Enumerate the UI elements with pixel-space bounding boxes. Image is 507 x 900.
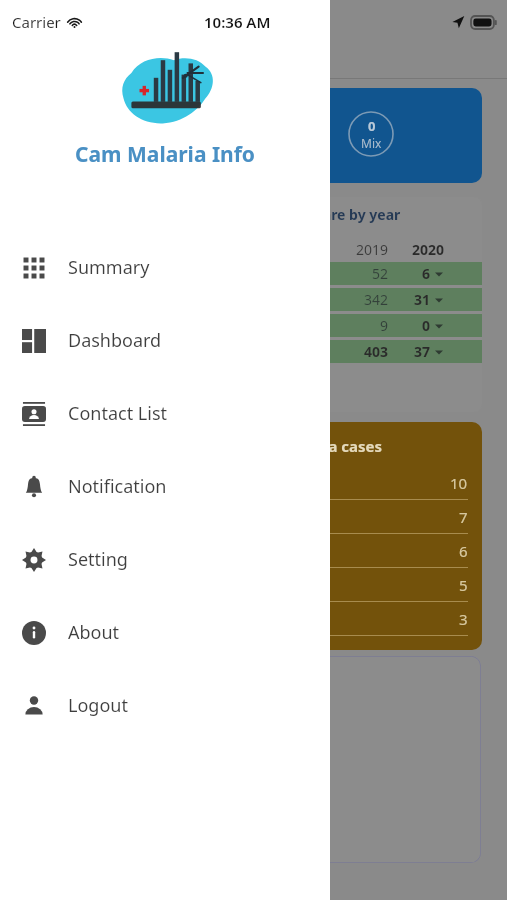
staticText: Ou Sambrom	[184, 473, 450, 493]
button[interactable]: Summary	[0, 231, 330, 304]
staticText: Mix	[361, 135, 382, 151]
staticText: Logout	[68, 693, 128, 718]
staticText: 37	[396, 342, 430, 361]
staticText: 0	[368, 117, 376, 135]
button[interactable]: Logout	[0, 669, 330, 742]
staticText: Contact List	[68, 401, 167, 426]
staticText: Summary	[68, 255, 150, 280]
button[interactable]: Contact List	[0, 377, 330, 450]
button[interactable]: Notification	[0, 450, 330, 523]
staticText: 3	[459, 609, 468, 629]
staticText: 6	[396, 264, 430, 283]
staticText: Pou Krouch	[184, 541, 459, 561]
staticText: 10:36 AM	[204, 12, 271, 32]
button[interactable]: About	[0, 596, 330, 669]
staticText: About	[68, 620, 120, 645]
staticText: 2020	[396, 240, 444, 259]
staticText: 9	[326, 316, 388, 335]
staticText: Malaria cases compare by year	[186, 205, 401, 224]
staticText: Top 5 village malaria cases	[184, 436, 383, 456]
button[interactable]: Dashboard	[0, 304, 330, 377]
staticText: Chak Krong	[184, 507, 459, 527]
staticText: 403	[326, 342, 388, 361]
staticText: 6	[459, 541, 468, 561]
staticText: Setting	[68, 547, 128, 572]
staticText: 10	[450, 473, 468, 493]
staticText: Kbal Damrei	[184, 609, 459, 629]
staticText: 31	[396, 290, 430, 309]
staticText: Notification	[68, 474, 167, 499]
staticText: Ta Ngeng	[184, 575, 459, 595]
staticText: Carrier	[12, 12, 61, 32]
staticText: Dashboard	[68, 328, 162, 353]
staticText: 5	[459, 575, 468, 595]
staticText: 2019	[326, 240, 388, 259]
staticText: 342	[326, 290, 388, 309]
staticText: 7	[459, 507, 468, 527]
staticText: 52	[326, 264, 388, 283]
staticText: 0	[396, 316, 430, 335]
button[interactable]: Setting	[0, 523, 330, 596]
staticText: Cam Malaria Info	[0, 140, 330, 169]
